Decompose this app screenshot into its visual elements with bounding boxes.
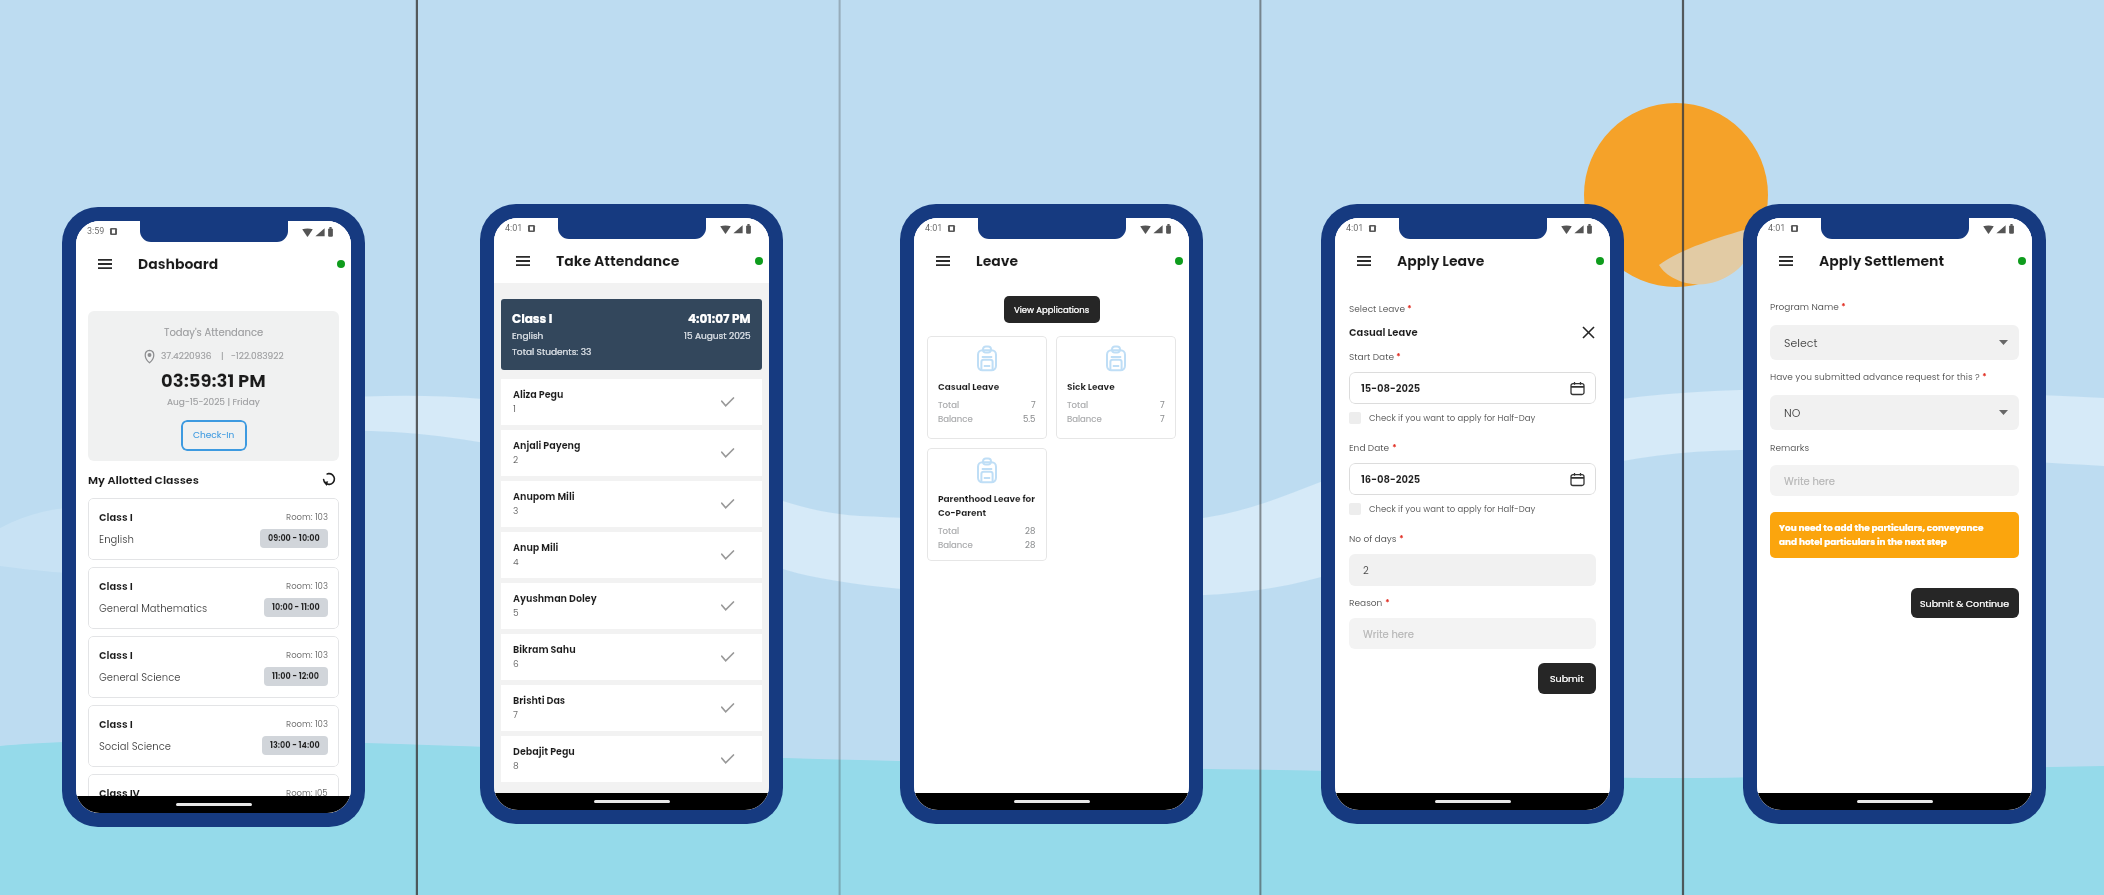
button[interactable]: Check if you want to apply for Half-Day xyxy=(1349,503,1536,515)
button[interactable]: Open navigation menu xyxy=(933,251,953,271)
button[interactable]: 16-08-2025 xyxy=(1349,463,1596,495)
button[interactable]: Brishti Das xyxy=(501,685,762,731)
staticText: My Allotted Classes xyxy=(88,472,199,487)
staticText: Ayushman Doley xyxy=(513,592,597,605)
staticText: Room: 103 xyxy=(286,511,328,523)
button[interactable]: Parenthood Leave for Co-Parent xyxy=(927,448,1047,561)
button[interactable]: Sick Leave xyxy=(1056,336,1176,439)
staticText: You need to add the particulars, conveya… xyxy=(1779,522,1984,548)
staticText: Anup Mili xyxy=(513,541,559,554)
button[interactable]: Aliza Pegu xyxy=(501,379,762,425)
button[interactable]: Class I xyxy=(88,636,339,698)
staticText: * xyxy=(1399,533,1404,546)
staticText: Balance xyxy=(1067,413,1102,425)
staticText: Class I xyxy=(99,717,133,731)
button[interactable]: Refresh classes xyxy=(319,469,339,489)
button[interactable]: Class I xyxy=(88,705,339,767)
staticText: 5 xyxy=(513,607,519,620)
staticText: 4 xyxy=(513,556,519,569)
staticText: English xyxy=(99,532,134,546)
staticText: Parenthood Leave for Co-Parent xyxy=(938,493,1036,519)
staticText: 2 xyxy=(1363,563,1369,577)
button[interactable]: Select xyxy=(1770,325,2019,360)
staticText: Check if you want to apply for Half-Day xyxy=(1369,503,1536,515)
staticText: 4:01 xyxy=(1768,223,1786,234)
staticText: 28 xyxy=(1025,525,1036,537)
button[interactable]: 15-08-2025 xyxy=(1349,372,1596,404)
button[interactable]: Open navigation menu xyxy=(1776,251,1796,271)
staticText: 28 xyxy=(1025,539,1036,551)
staticText: Room: I05 xyxy=(286,787,328,799)
staticText: Aliza Pegu xyxy=(513,388,564,401)
staticText: Apply Leave xyxy=(1397,251,1485,271)
staticText: Anjali Payeng xyxy=(513,439,581,452)
staticText: Debajit Pegu xyxy=(513,745,575,758)
button[interactable]: Submit & Continue xyxy=(1911,588,2019,618)
staticText: 1 xyxy=(513,403,516,416)
button[interactable]: Class IV xyxy=(88,774,339,813)
staticText: Total xyxy=(938,525,959,537)
staticText: English xyxy=(512,330,544,343)
button[interactable]: Bikram Sahu xyxy=(501,634,762,680)
staticText: * xyxy=(1396,351,1401,364)
staticText: 4:01 xyxy=(505,223,523,234)
button[interactable]: Ayushman Doley xyxy=(501,583,762,629)
staticText: Take Attendance xyxy=(556,251,680,271)
button[interactable]: Anup Mili xyxy=(501,532,762,578)
staticText: General Science xyxy=(99,670,181,684)
button[interactable]: Open navigation menu xyxy=(95,254,115,274)
staticText: 8 xyxy=(513,760,519,773)
staticText: No of days xyxy=(1349,533,1397,546)
staticText: * xyxy=(1407,303,1412,316)
staticText: Sick Leave xyxy=(1067,381,1115,393)
staticText: Class I xyxy=(512,310,553,327)
staticText: Brishti Das xyxy=(513,694,566,707)
staticText: Aug-15-2025 | Friday xyxy=(167,396,260,409)
staticText: 4:01:07 PM xyxy=(688,310,751,327)
staticText: Program Name xyxy=(1770,301,1839,314)
staticText: Check-In xyxy=(193,429,235,442)
staticText: Room: 103 xyxy=(286,718,328,730)
staticText: Social Science xyxy=(99,739,171,753)
button[interactable]: Open navigation menu xyxy=(513,251,533,271)
staticText: Select xyxy=(1784,335,1818,350)
button[interactable]: Open navigation menu xyxy=(1354,251,1374,271)
button[interactable]: Anjali Payeng xyxy=(501,430,762,476)
staticText: 7 xyxy=(1160,399,1165,411)
button[interactable]: NO xyxy=(1770,395,2019,430)
staticText: Write here xyxy=(1363,627,1414,641)
button[interactable]: View Applications xyxy=(1004,296,1100,323)
staticText: Room: 103 xyxy=(286,580,328,592)
staticText: 13:00 - 14:00 xyxy=(270,740,320,751)
staticText: Start Date xyxy=(1349,351,1394,364)
button[interactable]: Casual Leave xyxy=(927,336,1047,439)
staticText: Apply Settlement xyxy=(1819,251,1945,271)
staticText: Anupom Mili xyxy=(513,490,575,503)
button[interactable]: Debajit Pegu xyxy=(501,736,762,782)
staticText: Select Leave xyxy=(1349,303,1405,316)
staticText: Write here xyxy=(1784,474,1835,488)
button[interactable]: Clear selected leave xyxy=(1580,324,1596,340)
staticText: Today's Attendance xyxy=(164,325,264,339)
staticText: * xyxy=(1982,371,1987,384)
staticText: Class IV xyxy=(99,786,140,800)
button[interactable]: Submit xyxy=(1538,663,1596,694)
button[interactable]: Check if you want to apply for Half-Day xyxy=(1349,412,1536,424)
staticText: 4:01 xyxy=(925,223,943,234)
staticText: Balance xyxy=(938,539,973,551)
staticText: 03:59:31 PM xyxy=(161,368,266,393)
button[interactable]: Class I xyxy=(88,567,339,629)
button[interactable]: Check-In xyxy=(181,420,247,451)
button[interactable]: Class I xyxy=(88,498,339,560)
staticText: Casual Leave xyxy=(1349,325,1418,339)
staticText: Leave xyxy=(976,251,1019,271)
staticText: 7 xyxy=(513,709,518,722)
staticText: * xyxy=(1841,301,1846,314)
staticText: 5.5 xyxy=(1023,413,1036,425)
staticText: Submit xyxy=(1550,672,1584,685)
staticText: Class I xyxy=(99,579,133,593)
staticText: Class I xyxy=(99,648,133,662)
staticText: 16-08-2025 xyxy=(1361,472,1421,486)
button[interactable]: Anupom Mili xyxy=(501,481,762,527)
staticText: Submit & Continue xyxy=(1920,597,2010,610)
